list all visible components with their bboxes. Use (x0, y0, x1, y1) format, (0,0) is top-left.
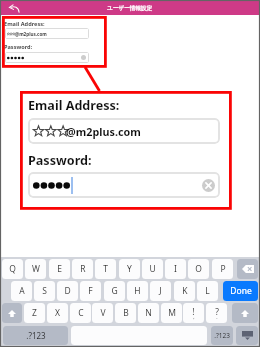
staticText: U (149, 263, 156, 275)
staticText: T (103, 263, 108, 275)
button[interactable]: S (34, 281, 55, 301)
button[interactable]: C (70, 303, 91, 323)
staticText: X (55, 307, 60, 319)
button[interactable]: E (49, 259, 70, 279)
button[interactable]: D (57, 281, 78, 301)
staticText: @m2plus.com (15, 31, 47, 37)
staticText: D (64, 285, 71, 297)
button[interactable]: @m2plus.com (28, 118, 220, 144)
staticText: Z (32, 307, 37, 319)
button[interactable]: .?123 (3, 326, 68, 345)
button[interactable]: Y (119, 259, 140, 279)
button[interactable]: .?123 (211, 326, 233, 345)
button[interactable]: X (47, 303, 68, 323)
button[interactable]: W (25, 259, 46, 279)
button[interactable]: N (138, 303, 159, 323)
button[interactable]: Q (2, 259, 23, 279)
staticText: Email Address: (4, 20, 45, 28)
button[interactable]: Shift (232, 303, 258, 323)
button[interactable]: M (161, 303, 182, 323)
staticText: Password: (28, 152, 92, 169)
button[interactable] (5, 52, 89, 63)
staticText: A (19, 285, 25, 297)
button[interactable]: Back (8, 4, 20, 13)
staticText: K (182, 285, 188, 297)
staticText: W (32, 263, 40, 275)
button[interactable]: H (127, 281, 148, 301)
button[interactable]: G (104, 281, 125, 301)
button[interactable]: O (188, 259, 209, 279)
staticText: Y (127, 263, 132, 275)
staticText: ユーザー情報設定 (107, 5, 153, 12)
staticText: O (195, 263, 202, 275)
staticText: V (100, 307, 106, 319)
staticText: I (174, 263, 177, 275)
staticText: L (205, 285, 210, 297)
button[interactable]: R (72, 259, 93, 279)
staticText: , (193, 314, 195, 321)
staticText: J (159, 285, 162, 297)
button[interactable]: B (115, 303, 136, 323)
staticText: ! (192, 306, 195, 318)
button[interactable]: Backspace (237, 259, 258, 279)
button[interactable]: I (165, 259, 186, 279)
button[interactable]: Hide keyboard (236, 326, 258, 345)
button[interactable]: ! (183, 303, 204, 323)
staticText: M (168, 307, 176, 319)
staticText: F (88, 285, 93, 297)
button[interactable]: Clear text (202, 179, 215, 192)
button[interactable]: V (92, 303, 113, 323)
staticText: .?123 (26, 330, 46, 341)
staticText: C (78, 307, 84, 319)
button[interactable]: P (212, 259, 233, 279)
staticText: .?123 (214, 331, 230, 340)
staticText: B (123, 307, 129, 319)
button[interactable]: U (142, 259, 163, 279)
button[interactable]: ? (206, 303, 227, 323)
staticText: Password: (4, 43, 33, 51)
staticText: Email Address: (28, 97, 120, 114)
staticText: S (42, 285, 47, 297)
staticText: ? (215, 306, 219, 318)
staticText: P (220, 263, 226, 275)
staticText: G (111, 285, 118, 297)
staticText: Done (230, 285, 252, 297)
button[interactable]: F (80, 281, 101, 301)
button[interactable]: A (11, 281, 32, 301)
button[interactable]: J (150, 281, 171, 301)
staticText: H (134, 285, 141, 297)
staticText: R (80, 263, 86, 275)
staticText: N (145, 307, 152, 319)
staticText: E (57, 263, 62, 275)
button[interactable]: T (95, 259, 116, 279)
staticText: @m2plus.com (66, 124, 141, 139)
button[interactable]: L (197, 281, 218, 301)
staticText: Q (9, 263, 16, 275)
button[interactable]: K (174, 281, 195, 301)
button[interactable]: @m2plus.com (5, 28, 89, 39)
button[interactable]: Shift (2, 303, 22, 323)
button[interactable]: Clear text (28, 172, 220, 198)
button[interactable]: Z (24, 303, 45, 323)
staticText: . (216, 314, 218, 321)
button[interactable]: Done (223, 281, 258, 301)
